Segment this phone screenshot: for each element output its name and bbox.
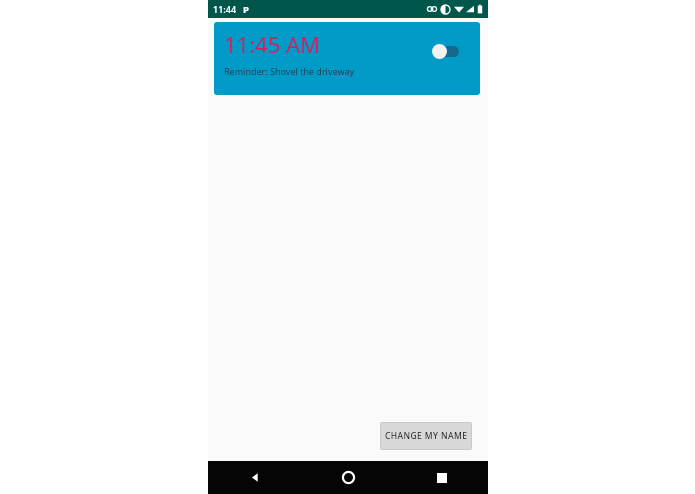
button[interactable]: Toggle reminder (430, 42, 464, 60)
staticText: P (243, 3, 249, 16)
button[interactable]: Home (302, 461, 395, 494)
staticText: Reminder: Shovel the driveway (224, 65, 355, 77)
staticText: 11:44 (213, 3, 237, 15)
button[interactable]: 11:45 AM (214, 22, 480, 95)
staticText: CHANGE MY NAME (385, 430, 468, 442)
button[interactable]: Back (208, 461, 302, 494)
staticText: 11:45 AM (224, 29, 320, 59)
button[interactable]: Recent apps (395, 461, 488, 494)
button[interactable]: CHANGE MY NAME (381, 423, 471, 449)
